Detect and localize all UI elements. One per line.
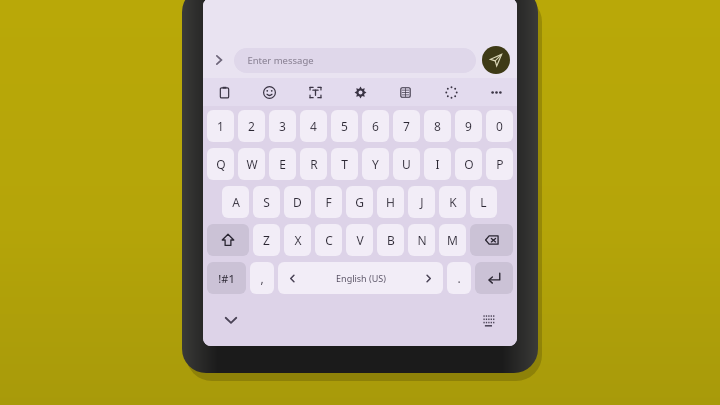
staticText: U xyxy=(402,156,411,172)
staticText: 1 xyxy=(217,118,224,134)
button[interactable]: U xyxy=(393,148,420,180)
staticText: 7 xyxy=(403,118,410,134)
button[interactable]: M xyxy=(439,224,466,256)
staticText: V xyxy=(356,232,364,248)
staticText: 8 xyxy=(434,118,441,134)
button[interactable]: Shift xyxy=(207,224,249,256)
staticText: W xyxy=(246,156,258,172)
button[interactable]: English (US) xyxy=(278,262,443,294)
button[interactable]: O xyxy=(455,148,482,180)
staticText: 0 xyxy=(496,118,503,134)
staticText: 3 xyxy=(279,118,286,134)
button[interactable]: H xyxy=(377,186,404,218)
staticText: F xyxy=(325,194,332,210)
button[interactable]: Expand xyxy=(208,49,230,71)
button[interactable]: 0 xyxy=(486,110,513,142)
button[interactable]: Z xyxy=(253,224,280,256)
button[interactable]: More options xyxy=(485,81,507,103)
button[interactable]: C xyxy=(315,224,342,256)
button[interactable]: F xyxy=(315,186,342,218)
staticText: !#1 xyxy=(218,271,235,286)
button[interactable]: G xyxy=(346,186,373,218)
button[interactable]: I xyxy=(424,148,451,180)
button[interactable]: Clipboard xyxy=(213,81,235,103)
button[interactable]: Q xyxy=(207,148,234,180)
button[interactable]: 6 xyxy=(362,110,389,142)
staticText: A xyxy=(232,194,240,210)
button[interactable]: 7 xyxy=(393,110,420,142)
button[interactable]: Keyboard layout xyxy=(477,308,501,332)
button[interactable]: Enter xyxy=(475,262,513,294)
button[interactable]: A xyxy=(222,186,249,218)
staticText: . xyxy=(457,270,461,286)
staticText: 5 xyxy=(341,118,348,134)
button[interactable]: T xyxy=(331,148,358,180)
staticText: L xyxy=(480,194,487,210)
button[interactable]: 1 xyxy=(207,110,234,142)
button[interactable]: B xyxy=(377,224,404,256)
staticText: 2 xyxy=(248,118,255,134)
button[interactable]: L xyxy=(470,186,497,218)
staticText: Enter message xyxy=(247,54,314,67)
staticText: C xyxy=(325,232,333,248)
staticText: G xyxy=(355,194,364,210)
button[interactable]: 3 xyxy=(269,110,296,142)
button[interactable]: J xyxy=(408,186,435,218)
button[interactable]: Send xyxy=(482,46,510,74)
button[interactable]: S xyxy=(253,186,280,218)
button[interactable]: K xyxy=(439,186,466,218)
staticText: D xyxy=(293,194,302,210)
staticText: E xyxy=(279,156,286,172)
staticText: P xyxy=(496,156,504,172)
button[interactable]: D xyxy=(284,186,311,218)
button[interactable]: 4 xyxy=(300,110,327,142)
button[interactable]: V xyxy=(346,224,373,256)
staticText: T xyxy=(341,156,348,172)
button[interactable]: 8 xyxy=(424,110,451,142)
button[interactable]: Text extract xyxy=(304,81,326,103)
staticText: 6 xyxy=(372,118,379,134)
staticText: X xyxy=(294,232,302,248)
button[interactable]: 5 xyxy=(331,110,358,142)
button[interactable]: Enter message xyxy=(234,48,476,73)
button[interactable]: R xyxy=(300,148,327,180)
staticText: Y xyxy=(372,156,379,172)
button[interactable]: P xyxy=(486,148,513,180)
staticText: Z xyxy=(263,232,270,248)
staticText: M xyxy=(447,232,458,248)
button[interactable]: X xyxy=(284,224,311,256)
button[interactable]: . xyxy=(447,262,471,294)
staticText: 9 xyxy=(465,118,472,134)
staticText: B xyxy=(387,232,395,248)
button[interactable]: Y xyxy=(362,148,389,180)
staticText: , xyxy=(260,270,264,286)
button[interactable]: , xyxy=(250,262,274,294)
staticText: O xyxy=(464,156,474,172)
staticText: I xyxy=(435,156,440,172)
staticText: N xyxy=(417,232,427,248)
button[interactable]: 9 xyxy=(455,110,482,142)
button[interactable]: Backspace xyxy=(470,224,513,256)
button[interactable]: !#1 xyxy=(207,262,246,294)
button[interactable]: Hide keyboard xyxy=(219,308,243,332)
staticText: S xyxy=(263,194,270,210)
button[interactable]: Settings xyxy=(349,81,371,103)
button[interactable]: W xyxy=(238,148,265,180)
staticText: 4 xyxy=(310,118,317,134)
button[interactable]: N xyxy=(408,224,435,256)
staticText: English (US) xyxy=(336,272,386,284)
button[interactable]: E xyxy=(269,148,296,180)
staticText: K xyxy=(449,194,457,210)
button[interactable]: Split keyboard xyxy=(394,81,416,103)
staticText: Q xyxy=(216,156,226,172)
button[interactable]: Handwriting xyxy=(440,81,462,103)
staticText: R xyxy=(310,156,318,172)
button[interactable]: Emoji xyxy=(258,81,280,103)
staticText: H xyxy=(386,194,395,210)
staticText: J xyxy=(420,194,424,210)
button[interactable]: 2 xyxy=(238,110,265,142)
